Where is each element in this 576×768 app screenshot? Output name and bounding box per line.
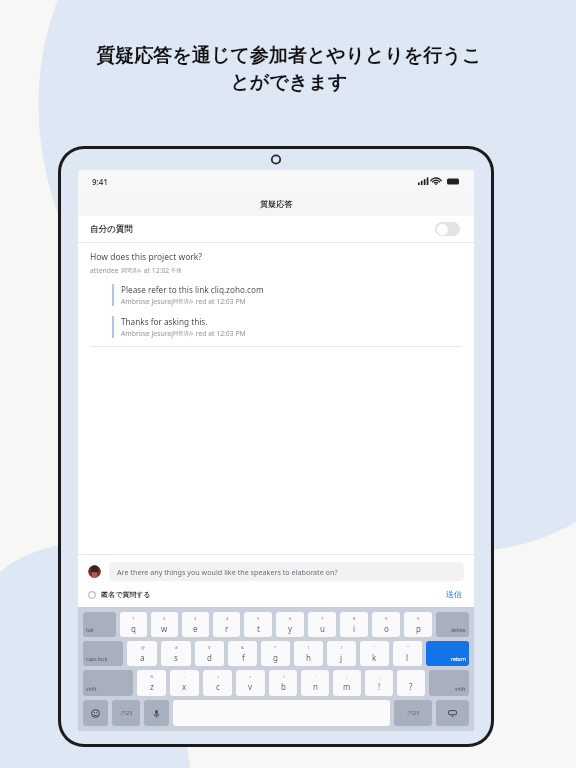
- staticText: h: [306, 652, 311, 663]
- staticText: 自分の質問: [90, 224, 133, 235]
- button[interactable]: &: [228, 641, 257, 666]
- button[interactable]: 8: [340, 612, 368, 637]
- button[interactable]: :: [301, 670, 329, 696]
- staticText: 9:41: [92, 176, 108, 187]
- staticText: *: [274, 645, 277, 651]
- staticText: k: [372, 652, 377, 663]
- button[interactable]: 匿名で質問する: [88, 590, 151, 599]
- staticText: &: [241, 645, 245, 651]
- button[interactable]: tab: [83, 612, 116, 637]
- button[interactable]: .?123: [394, 700, 432, 726]
- button[interactable]: ): [327, 641, 356, 666]
- staticText: 6: [289, 616, 292, 622]
- button[interactable]: Emoji: [83, 700, 108, 726]
- staticText: u: [320, 623, 325, 634]
- staticText: Ambrose Jesuraj: [121, 297, 173, 306]
- button[interactable]: 1: [120, 612, 147, 637]
- staticText: 1: [132, 616, 135, 622]
- staticText: p: [416, 623, 421, 634]
- staticText: 回答済み: [173, 298, 194, 305]
- button[interactable]: Please refer to this link cliq.zoho.com: [112, 284, 462, 306]
- button[interactable]: Hide keyboard: [436, 700, 469, 726]
- button[interactable]: #: [161, 641, 191, 666]
- staticText: (: [308, 645, 310, 651]
- button[interactable]: Thanks for asking this.: [112, 316, 462, 338]
- button[interactable]: 9: [372, 612, 400, 637]
- button[interactable]: *: [261, 641, 290, 666]
- staticText: Ambrose Jesuraj: [121, 329, 173, 338]
- staticText: t: [257, 623, 260, 634]
- button[interactable]: =: [236, 670, 265, 696]
- button[interactable]: shift: [429, 670, 469, 696]
- button[interactable]: @: [127, 641, 157, 666]
- button[interactable]: .?123: [112, 700, 140, 726]
- button[interactable]: Toggle my questions: [435, 222, 460, 236]
- staticText: m: [343, 681, 351, 692]
- button[interactable]: 送信: [444, 587, 464, 601]
- staticText: z: [150, 681, 154, 692]
- button[interactable]: ;: [333, 670, 361, 696]
- staticText: 2: [163, 616, 166, 622]
- staticText: delete: [451, 627, 466, 634]
- staticText: Thanks for asking this.: [121, 316, 208, 327]
- button[interactable]: shift: [83, 670, 133, 696]
- button[interactable]: 3: [182, 612, 209, 637]
- staticText: 7: [321, 616, 324, 622]
- staticText: .?123: [120, 710, 133, 717]
- staticText: ': [374, 645, 375, 651]
- staticText: -: [184, 674, 186, 680]
- staticText: q: [131, 623, 136, 634]
- staticText: e: [193, 623, 198, 634]
- button[interactable]: 2: [151, 612, 178, 637]
- staticText: 9: [385, 616, 388, 622]
- staticText: 5: [257, 616, 260, 622]
- staticText: How does this project work?: [90, 251, 203, 263]
- button[interactable]: delete: [436, 612, 469, 637]
- staticText: red at 12:03 PM: [194, 329, 246, 338]
- button[interactable]: 5: [244, 612, 272, 637]
- button[interactable]: ": [393, 641, 422, 666]
- staticText: 4: [226, 616, 229, 622]
- button[interactable]: ': [360, 641, 389, 666]
- staticText: attendee: [90, 266, 121, 275]
- button[interactable]: /: [269, 670, 297, 696]
- button[interactable]: Are there any things you would like the …: [109, 562, 464, 581]
- staticText: l: [406, 652, 409, 663]
- staticText: i: [353, 623, 356, 634]
- staticText: .: [410, 674, 412, 680]
- staticText: Please refer to this link cliq.zoho.com: [121, 284, 264, 295]
- button[interactable]: Dictate: [144, 700, 169, 726]
- staticText: ): [341, 645, 343, 651]
- button[interactable]: 7: [308, 612, 336, 637]
- staticText: v: [248, 681, 253, 692]
- staticText: b: [281, 681, 286, 692]
- staticText: a: [140, 652, 145, 663]
- staticText: d: [207, 652, 212, 663]
- staticText: o: [384, 623, 389, 634]
- button[interactable]: 6: [276, 612, 304, 637]
- staticText: @: [141, 645, 145, 651]
- button[interactable]: 0: [404, 612, 432, 637]
- staticText: s: [174, 652, 178, 663]
- button[interactable]: return: [426, 641, 469, 666]
- button[interactable]: (: [294, 641, 323, 666]
- staticText: 質疑応答: [260, 199, 292, 209]
- button[interactable]: caps lock: [83, 641, 123, 666]
- button[interactable]: -: [170, 670, 199, 696]
- staticText: j: [340, 652, 343, 663]
- button[interactable]: ;: [365, 670, 393, 696]
- staticText: Are there any things you would like the …: [117, 567, 338, 577]
- staticText: c: [216, 681, 220, 692]
- button[interactable]: +: [203, 670, 232, 696]
- staticText: +: [217, 674, 220, 680]
- button[interactable]: %: [137, 670, 166, 696]
- staticText: shift: [455, 686, 466, 693]
- staticText: y: [288, 623, 293, 634]
- button[interactable]: .: [397, 670, 425, 696]
- button[interactable]: 4: [213, 612, 240, 637]
- button[interactable]: 自分の質問: [78, 216, 474, 242]
- staticText: 質疑応答を通じて参加者とやりとりを行うこ とができます: [96, 44, 481, 95]
- button[interactable]: $: [195, 641, 224, 666]
- staticText: 回答済み: [173, 330, 194, 337]
